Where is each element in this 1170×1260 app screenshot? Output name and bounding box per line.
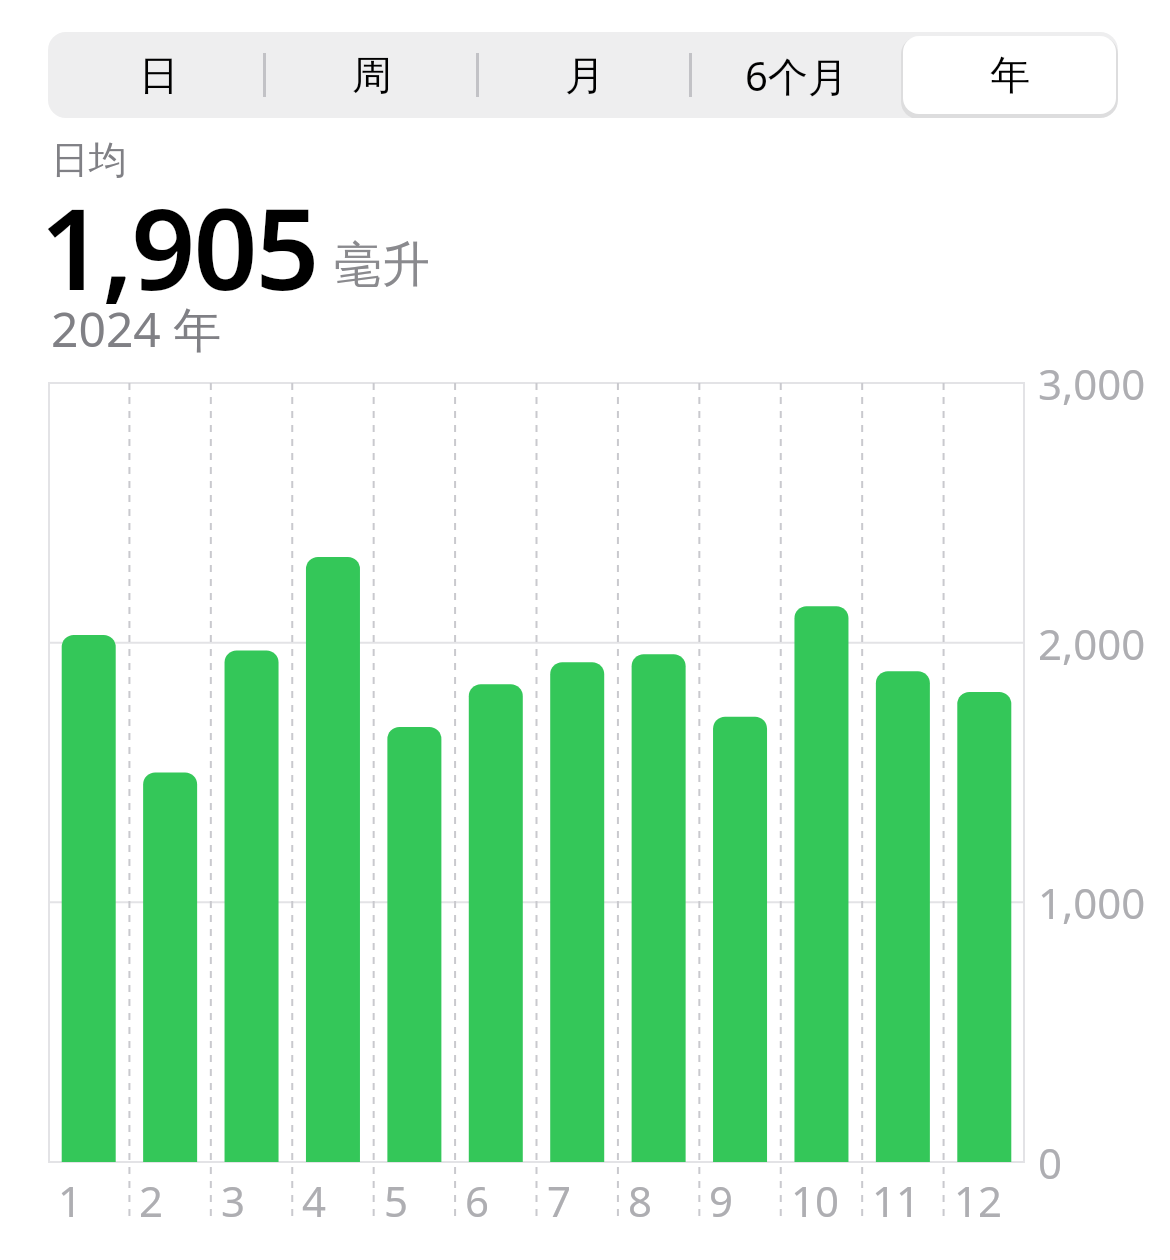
button[interactable]: 月 [478, 32, 691, 118]
staticText: 毫升 [334, 235, 430, 295]
staticText: 月 [565, 50, 605, 100]
staticText: 7 [547, 1172, 572, 1229]
button[interactable]: 日 [52, 32, 265, 118]
staticText: 10 [791, 1172, 840, 1229]
staticText: 8 [628, 1172, 653, 1229]
staticText: 2024 年 [51, 296, 222, 362]
staticText: 0 [1038, 1134, 1063, 1191]
staticText: 日 [139, 50, 179, 100]
staticText: 1 [58, 1172, 83, 1229]
staticText: 11 [872, 1172, 921, 1229]
staticText: 年 [990, 50, 1030, 100]
button[interactable]: 年 [903, 32, 1116, 118]
staticText: 5 [384, 1172, 409, 1229]
button[interactable]: 6个月 [690, 32, 903, 118]
staticText: 3,000 [1038, 355, 1146, 412]
staticText: 6个月 [745, 48, 848, 103]
staticText: 9 [709, 1172, 734, 1229]
staticText: 2,000 [1038, 615, 1146, 672]
staticText: 2 [139, 1172, 164, 1229]
staticText: 4 [302, 1172, 327, 1229]
staticText: 12 [954, 1172, 1003, 1229]
button[interactable]: 周 [265, 32, 478, 118]
staticText: 1,905 [40, 170, 318, 323]
staticText: 1,000 [1038, 874, 1146, 931]
staticText: 周 [352, 50, 392, 100]
staticText: 日均 [51, 136, 127, 184]
staticText: 3 [221, 1172, 246, 1229]
staticText: 6 [465, 1172, 490, 1229]
